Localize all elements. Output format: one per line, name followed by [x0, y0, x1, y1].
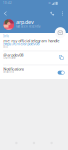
staticText: me: my official telegram handle: [3, 38, 59, 43]
button[interactable]: More options: [59, 9, 66, 18]
staticText: @arpdev08: [3, 52, 23, 57]
button[interactable]: Notifications, on: [56, 69, 66, 76]
button[interactable]: Recents: [50, 142, 53, 144]
staticText: arp.dev: [16, 18, 34, 25]
button[interactable]: Back: [15, 142, 18, 144]
staticText: last seen recently: [16, 25, 40, 28]
staticText: Username: [3, 56, 16, 60]
staticText: Bio: [3, 45, 8, 49]
staticText: 10:42: [3, 1, 12, 5]
button[interactable]: Copy username: [58, 54, 65, 61]
staticText: https://t.me/arpdev08: [3, 41, 39, 46]
staticText: Info: [3, 34, 9, 38]
button[interactable]: Send message: [55, 27, 66, 38]
button[interactable]: Call: [48, 9, 57, 18]
staticText: Notifications: [3, 66, 24, 71]
button[interactable]: Back: [1, 9, 9, 18]
staticText: LTE: [47, 2, 50, 5]
staticText: Enabled: [3, 70, 14, 74]
